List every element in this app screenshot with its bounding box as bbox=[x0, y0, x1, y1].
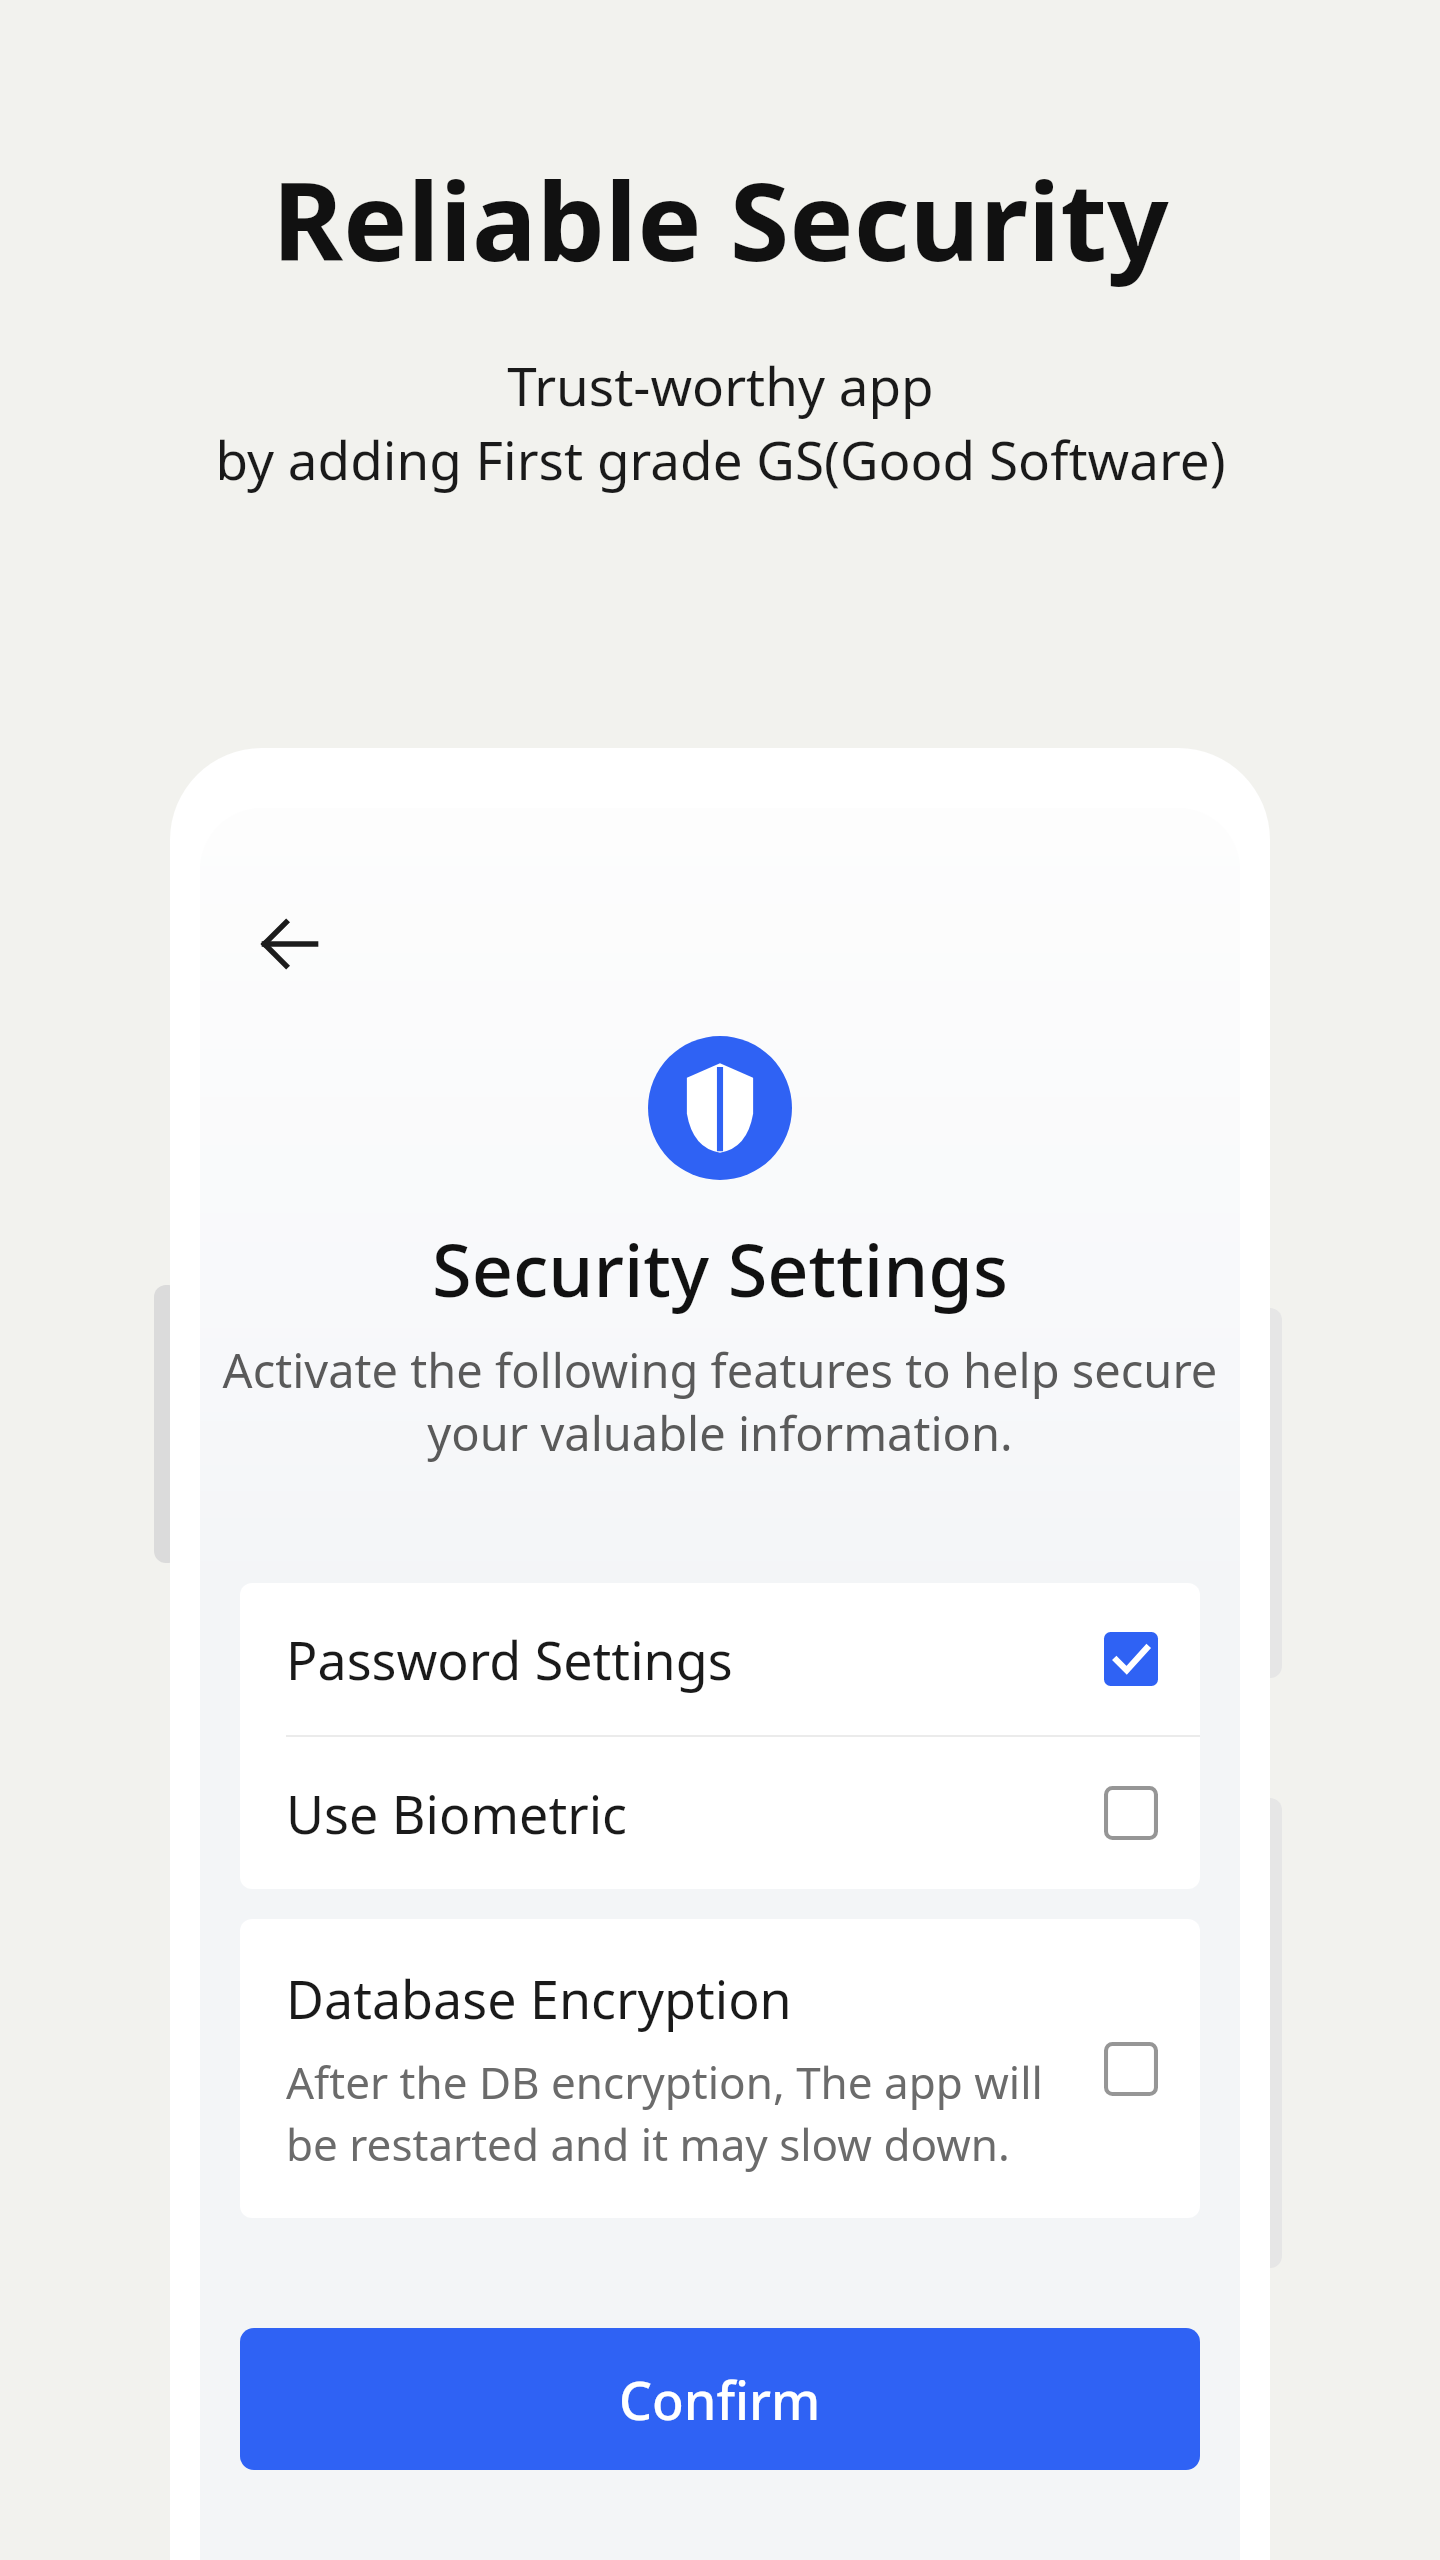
staticText: Trust-worthy app by adding First grade G… bbox=[215, 349, 1226, 496]
staticText: Activate the following features to help … bbox=[200, 1338, 1240, 1465]
button[interactable]: Password Settings bbox=[240, 1583, 1200, 1735]
button[interactable]: Checked bbox=[1104, 1632, 1158, 1686]
staticText: Reliable Security bbox=[272, 146, 1169, 293]
staticText: Password Settings bbox=[286, 1624, 1104, 1695]
staticText: Use Biometric bbox=[286, 1778, 1104, 1849]
staticText: Database Encryption bbox=[286, 1963, 792, 2034]
button[interactable]: Database Encryption bbox=[240, 1919, 1200, 2218]
staticText: After the DB encryption, The app will be… bbox=[286, 2052, 1043, 2174]
button[interactable]: Confirm bbox=[240, 2328, 1200, 2470]
button[interactable]: Unchecked bbox=[1104, 2042, 1158, 2096]
button[interactable]: Unchecked bbox=[1104, 1786, 1158, 1840]
staticText: Confirm bbox=[619, 2364, 821, 2435]
staticText: Security Settings bbox=[200, 1220, 1240, 1318]
button[interactable]: Use Biometric bbox=[240, 1737, 1200, 1889]
button[interactable]: Back bbox=[242, 896, 338, 992]
